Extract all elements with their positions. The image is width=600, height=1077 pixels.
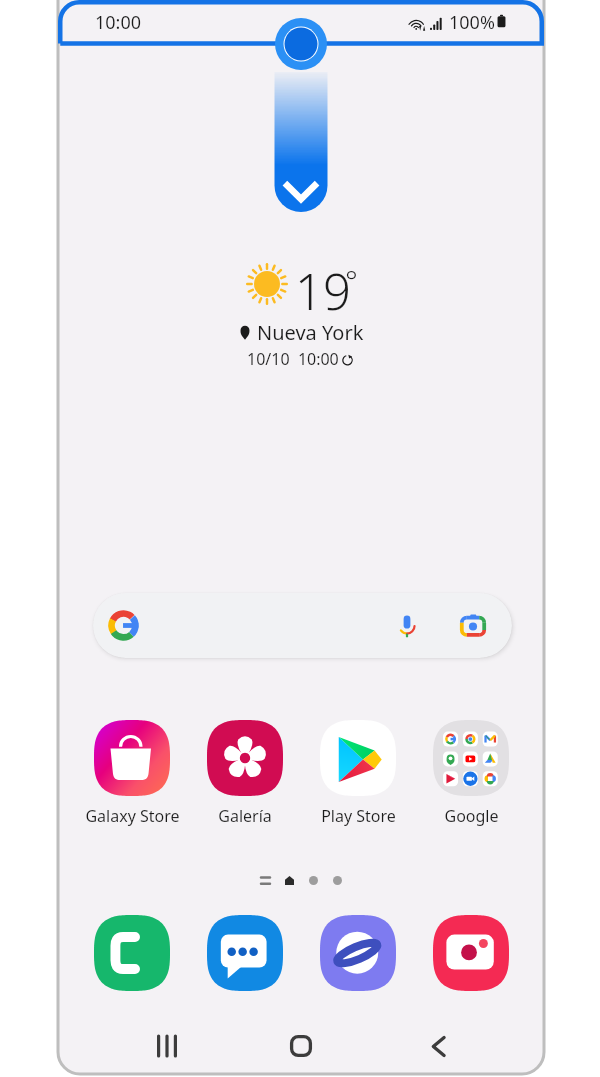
staticText: °: [345, 260, 358, 301]
staticText: 10:00: [95, 10, 142, 35]
staticText: Galaxy Store: [85, 805, 180, 827]
staticText: Play Store: [321, 805, 396, 827]
other: Voice search: [394, 613, 420, 639]
button[interactable]: Messages: [207, 915, 283, 991]
button[interactable]: Galaxy Store: [76, 720, 188, 827]
button[interactable]: Internet: [320, 915, 396, 991]
staticText: Galería: [218, 805, 272, 827]
button[interactable]: Camera: [433, 915, 509, 991]
other: Google Lens: [459, 612, 487, 640]
button[interactable]: Home: [275, 1022, 327, 1070]
staticText: 19: [295, 258, 351, 325]
button[interactable]: Galería: [189, 720, 301, 827]
button[interactable]: Phone: [94, 915, 170, 991]
staticText: Nueva York: [257, 319, 364, 346]
button[interactable]: Recents: [141, 1022, 193, 1070]
button[interactable]: Google: [415, 720, 527, 827]
staticText: Google: [444, 805, 499, 827]
button[interactable]: Voice search: [93, 593, 512, 658]
button[interactable]: Play Store: [302, 720, 414, 827]
button[interactable]: Back: [412, 1022, 464, 1070]
staticText: 10/10 10:00: [247, 348, 339, 370]
staticText: 100%: [449, 10, 495, 35]
